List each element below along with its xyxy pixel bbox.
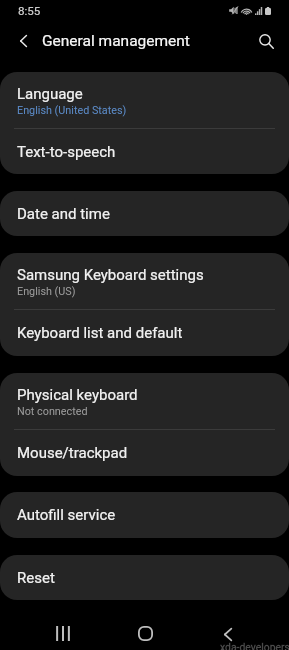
button[interactable]: Language	[0, 72, 289, 129]
button[interactable]: Mouse/trackpad	[0, 430, 289, 476]
staticText: Physical keyboard	[17, 386, 138, 404]
button[interactable]: Keyboard list and default	[0, 310, 289, 356]
staticText: English (United States)	[17, 104, 127, 117]
button[interactable]: Text-to-speech	[0, 129, 289, 174]
button[interactable]: Date and time	[0, 191, 289, 236]
staticText: Mouse/trackpad	[17, 444, 128, 462]
button[interactable]: Search	[250, 25, 282, 57]
button[interactable]: Home	[124, 612, 167, 650]
staticText: 8:55	[18, 4, 41, 18]
staticText: English (US)	[17, 285, 76, 298]
staticText: Language	[17, 85, 83, 103]
staticText: Autofill service	[17, 506, 116, 524]
staticText: xda-developers	[220, 641, 289, 650]
staticText: Date and time	[17, 205, 110, 223]
button[interactable]: Samsung Keyboard settings	[0, 253, 289, 310]
staticText: Keyboard list and default	[17, 324, 183, 342]
staticText: Samsung Keyboard settings	[17, 266, 204, 284]
button[interactable]: Autofill service	[0, 492, 289, 538]
button[interactable]: Physical keyboard	[0, 373, 289, 430]
staticText: Reset	[17, 569, 55, 587]
staticText: Not connected	[17, 405, 88, 418]
staticText: Text-to-speech	[17, 143, 116, 161]
button[interactable]: Back	[206, 613, 249, 650]
staticText: General management	[42, 32, 190, 50]
button[interactable]: Navigate up	[7, 25, 39, 57]
button[interactable]: Reset	[0, 555, 289, 600]
button[interactable]: Recent apps	[41, 612, 84, 650]
